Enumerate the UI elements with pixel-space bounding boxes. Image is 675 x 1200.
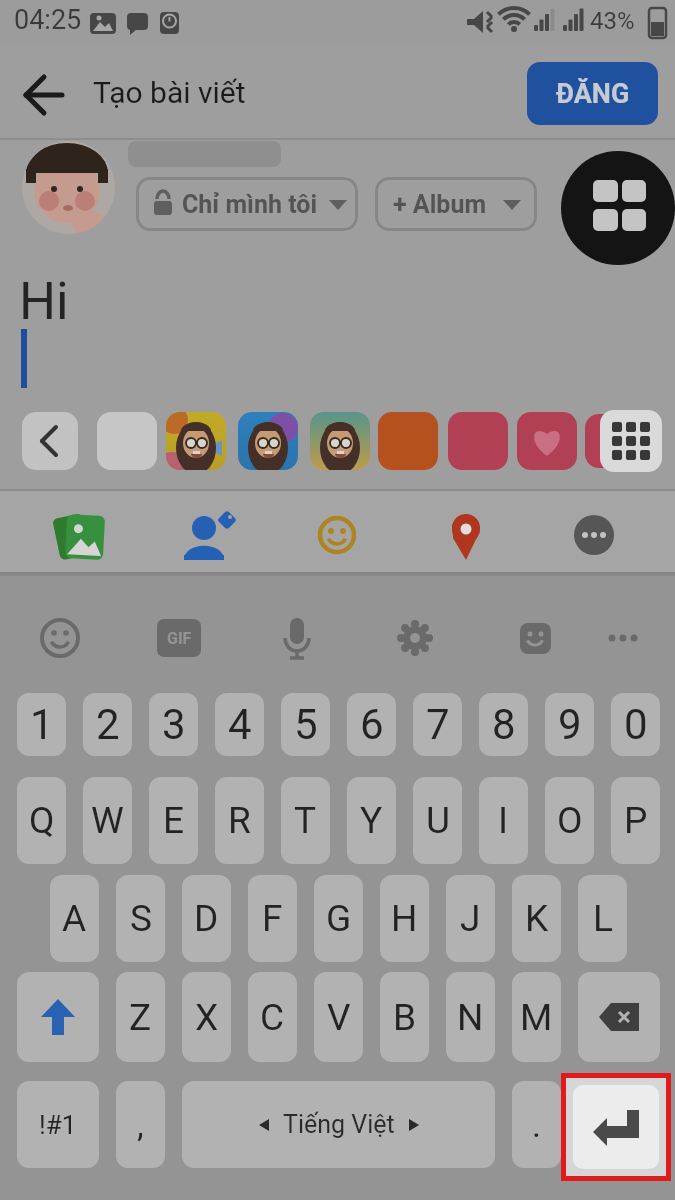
button[interactable]: G xyxy=(314,875,363,962)
staticText: Hi xyxy=(19,271,69,332)
button[interactable] xyxy=(573,1085,659,1169)
staticText: X xyxy=(195,996,219,1039)
button[interactable]: GIF xyxy=(157,619,201,657)
staticText: A xyxy=(62,897,87,940)
staticText: 43% xyxy=(590,7,635,35)
button[interactable]: O xyxy=(545,777,594,864)
staticText: Tiếng Việt xyxy=(283,1110,395,1139)
staticText: 5 xyxy=(294,700,318,749)
button[interactable] xyxy=(166,412,226,470)
button[interactable]: , xyxy=(116,1081,165,1168)
button[interactable] xyxy=(97,412,157,470)
staticText: F xyxy=(262,897,283,940)
button[interactable]: M xyxy=(512,972,561,1062)
staticText: 7 xyxy=(426,700,450,749)
button[interactable]: B xyxy=(380,972,429,1062)
button[interactable]: 0 xyxy=(611,693,660,756)
button[interactable]: Chỉ mình tôi xyxy=(136,177,358,231)
button[interactable]: D xyxy=(182,875,231,962)
staticText: L xyxy=(593,897,613,940)
button[interactable]: 1 xyxy=(17,693,66,756)
staticText: M xyxy=(520,996,553,1039)
button[interactable]: V xyxy=(314,972,363,1062)
button[interactable]: A xyxy=(50,875,99,962)
button[interactable]: 7 xyxy=(413,693,462,756)
button[interactable]: X xyxy=(182,972,231,1062)
staticText: 6 xyxy=(360,700,384,749)
staticText: I xyxy=(498,799,509,842)
button[interactable]: 4 xyxy=(215,693,264,756)
button[interactable]: + Album xyxy=(375,177,537,231)
staticText: O xyxy=(557,799,583,842)
staticText: B xyxy=(393,996,417,1039)
button[interactable]: U xyxy=(413,777,462,864)
button[interactable]: !#1 xyxy=(17,1081,99,1168)
staticText: 8 xyxy=(492,700,516,749)
staticText: Y xyxy=(360,799,383,842)
button[interactable] xyxy=(310,412,370,470)
button[interactable]: Y xyxy=(347,777,396,864)
button[interactable] xyxy=(431,494,501,570)
button[interactable]: Q xyxy=(17,777,66,864)
button[interactable]: R xyxy=(215,777,264,864)
button[interactable] xyxy=(17,972,99,1062)
staticText: W xyxy=(91,799,124,842)
button[interactable]: . xyxy=(512,1081,561,1168)
button[interactable] xyxy=(172,494,242,570)
button[interactable] xyxy=(517,412,577,470)
button[interactable] xyxy=(600,410,662,472)
staticText: K xyxy=(525,897,549,940)
button[interactable]: 3 xyxy=(149,693,198,756)
button[interactable]: 6 xyxy=(347,693,396,756)
button[interactable]: L xyxy=(578,875,627,962)
button[interactable]: S xyxy=(116,875,165,962)
staticText: U xyxy=(426,799,450,842)
button[interactable]: Tiếng Việt xyxy=(182,1081,495,1168)
button[interactable] xyxy=(22,412,78,470)
staticText: C xyxy=(260,996,285,1039)
button[interactable] xyxy=(448,412,508,470)
button[interactable]: 5 xyxy=(281,693,330,756)
staticText: R xyxy=(228,799,251,842)
button[interactable]: N xyxy=(446,972,495,1062)
staticText: Q xyxy=(29,799,55,842)
button[interactable]: I xyxy=(479,777,528,864)
staticText: E xyxy=(163,799,185,842)
button[interactable] xyxy=(559,494,629,570)
staticText: , xyxy=(137,1105,144,1145)
button[interactable]: E xyxy=(149,777,198,864)
staticText: !#1 xyxy=(39,1110,77,1140)
button[interactable] xyxy=(378,412,438,470)
staticText: 9 xyxy=(558,700,582,749)
button[interactable]: T xyxy=(281,777,330,864)
button[interactable]: 8 xyxy=(479,693,528,756)
staticText: V xyxy=(327,996,351,1039)
staticText: P xyxy=(624,799,648,842)
button[interactable] xyxy=(578,972,660,1062)
staticText: 4 xyxy=(228,700,252,749)
button[interactable]: C xyxy=(248,972,297,1062)
staticText: GIF xyxy=(167,629,192,648)
staticText: G xyxy=(326,897,352,940)
button[interactable]: 2 xyxy=(83,693,132,756)
button[interactable] xyxy=(238,412,298,470)
button[interactable]: W xyxy=(83,777,132,864)
staticText: 1 xyxy=(30,700,54,749)
button[interactable]: P xyxy=(611,777,660,864)
button[interactable]: Z xyxy=(116,972,165,1062)
button[interactable]: 9 xyxy=(545,693,594,756)
button[interactable] xyxy=(26,65,66,125)
button[interactable]: J xyxy=(446,875,495,962)
staticText: ĐĂNG xyxy=(556,78,630,110)
button[interactable]: K xyxy=(512,875,561,962)
button[interactable] xyxy=(45,494,115,570)
staticText: 04:25 xyxy=(14,4,82,36)
button[interactable]: H xyxy=(380,875,429,962)
button[interactable] xyxy=(561,151,675,265)
button[interactable] xyxy=(302,494,372,570)
staticText: 2 xyxy=(96,700,120,749)
staticText: N xyxy=(457,996,484,1039)
staticText: J xyxy=(460,897,481,940)
button[interactable]: ĐĂNG xyxy=(527,62,658,125)
button[interactable]: F xyxy=(248,875,297,962)
